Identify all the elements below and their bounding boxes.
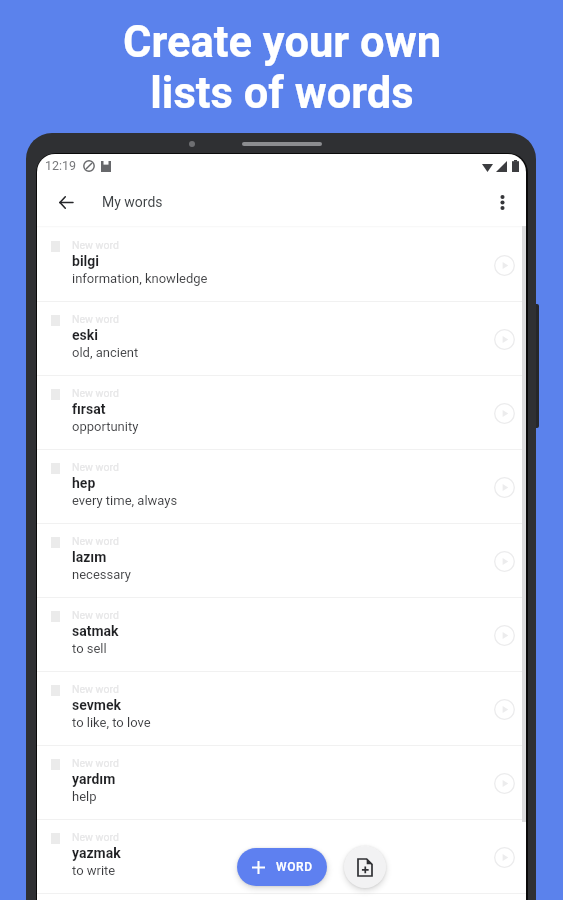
button[interactable]: New word bbox=[37, 228, 526, 301]
staticText: necessary bbox=[72, 567, 131, 582]
staticText: satmak bbox=[72, 623, 119, 639]
staticText: New word bbox=[72, 831, 119, 843]
staticText: old, ancient bbox=[72, 345, 139, 360]
staticText: to sell bbox=[72, 641, 107, 656]
button[interactable]: Play pronunciation of fırsat bbox=[484, 393, 524, 433]
button[interactable]: New word bbox=[37, 302, 526, 375]
staticText: New word bbox=[72, 609, 119, 621]
button[interactable]: More options bbox=[481, 181, 523, 223]
staticText: New word bbox=[72, 239, 119, 251]
staticText: My words bbox=[102, 194, 163, 210]
staticText: New word bbox=[72, 461, 119, 473]
staticText: fırsat bbox=[72, 401, 106, 417]
button[interactable]: Play pronunciation of lazım bbox=[484, 541, 524, 581]
button[interactable]: Play pronunciation of eski bbox=[484, 319, 524, 359]
button[interactable]: New word bbox=[37, 746, 526, 819]
button[interactable]: New word bbox=[37, 672, 526, 745]
staticText: yazmak bbox=[72, 845, 121, 861]
staticText: 12:19 bbox=[45, 158, 77, 173]
staticText: help bbox=[72, 789, 97, 804]
button[interactable]: Back bbox=[47, 183, 85, 221]
staticText: to like, to love bbox=[72, 715, 151, 730]
button[interactable]: WORD bbox=[237, 848, 327, 886]
button[interactable]: Play pronunciation of bilgi bbox=[484, 245, 524, 285]
staticText: yardım bbox=[72, 771, 116, 787]
button[interactable]: Play pronunciation of sevmek bbox=[484, 689, 524, 729]
button[interactable]: Add from file bbox=[344, 846, 386, 888]
staticText: bilgi bbox=[72, 253, 100, 269]
staticText: New word bbox=[72, 535, 119, 547]
staticText: lazım bbox=[72, 549, 107, 565]
staticText: every time, always bbox=[72, 493, 178, 508]
staticText: eski bbox=[72, 327, 98, 343]
button[interactable]: New word bbox=[37, 524, 526, 597]
staticText: New word bbox=[72, 757, 119, 769]
button[interactable]: Play pronunciation of yazmak bbox=[484, 837, 524, 877]
staticText: New word bbox=[72, 313, 119, 325]
staticText: New word bbox=[72, 387, 119, 399]
staticText: to write bbox=[72, 863, 116, 878]
staticText: hep bbox=[72, 475, 96, 491]
staticText: lists of words bbox=[150, 68, 414, 119]
staticText: New word bbox=[72, 683, 119, 695]
staticText: opportunity bbox=[72, 419, 139, 434]
staticText: WORD bbox=[276, 860, 313, 874]
staticText: Create your own bbox=[123, 17, 441, 68]
button[interactable]: New word bbox=[37, 376, 526, 449]
button[interactable]: New word bbox=[37, 598, 526, 671]
button[interactable]: New word bbox=[37, 450, 526, 523]
button[interactable]: Play pronunciation of hep bbox=[484, 467, 524, 507]
staticText: sevmek bbox=[72, 697, 121, 713]
button[interactable]: Play pronunciation of yardım bbox=[484, 763, 524, 803]
staticText: information, knowledge bbox=[72, 271, 208, 286]
button[interactable]: New word bbox=[37, 820, 526, 893]
button[interactable]: Play pronunciation of satmak bbox=[484, 615, 524, 655]
